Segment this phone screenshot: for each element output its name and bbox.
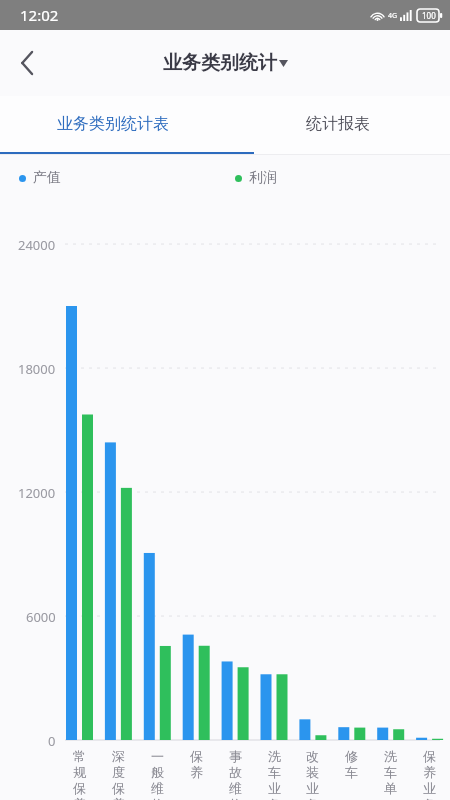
staticText: 维: [151, 780, 164, 796]
button[interactable]: 业务类别统计: [163, 51, 288, 75]
staticText: 产值: [33, 169, 61, 187]
staticText: 24000: [18, 236, 56, 254]
staticText: 业务类别统计表: [57, 114, 169, 134]
staticText: 业: [423, 780, 436, 796]
staticText: 12000: [18, 484, 56, 502]
staticText: 4G: [388, 11, 398, 21]
staticText: 18000: [18, 360, 56, 378]
staticText: 常: [73, 748, 86, 764]
staticText: 单: [384, 780, 397, 796]
staticText: 车: [268, 764, 281, 780]
staticText: 养: [423, 764, 436, 780]
staticText: 般: [151, 764, 164, 780]
staticText: 故: [229, 764, 242, 780]
button[interactable]: Back: [0, 36, 54, 90]
staticText: 一: [151, 748, 164, 764]
staticText: 养: [112, 796, 125, 800]
staticText: 洗: [268, 748, 281, 764]
staticText: 务: [268, 796, 281, 800]
staticText: 事: [229, 748, 242, 764]
staticText: 务: [423, 796, 436, 800]
staticText: 改: [306, 748, 319, 764]
staticText: 养: [190, 764, 203, 780]
staticText: 业务类别统计: [163, 51, 277, 75]
staticText: 养: [73, 796, 86, 800]
staticText: 修: [151, 796, 164, 800]
staticText: 100: [422, 10, 436, 21]
staticText: 6000: [26, 608, 56, 626]
staticText: 度: [112, 764, 125, 780]
staticText: 维: [229, 780, 242, 796]
staticText: 保: [423, 748, 436, 764]
staticText: 规: [73, 764, 86, 780]
staticText: 车: [345, 764, 358, 780]
staticText: 车: [384, 764, 397, 780]
staticText: 12:02: [20, 5, 59, 25]
staticText: 业: [268, 780, 281, 796]
staticText: 深: [112, 748, 125, 764]
staticText: 洗: [384, 748, 397, 764]
staticText: 业: [306, 780, 319, 796]
staticText: 修: [345, 748, 358, 764]
staticText: 修: [229, 796, 242, 800]
staticText: 务: [306, 796, 319, 800]
staticText: 保: [112, 780, 125, 796]
staticText: 0: [48, 732, 56, 750]
staticText: 保: [190, 748, 203, 764]
button[interactable]: 统计报表: [225, 96, 450, 152]
staticText: 利润: [249, 169, 277, 187]
button[interactable]: 业务类别统计表: [0, 96, 225, 152]
staticText: 保: [73, 780, 86, 796]
staticText: 装: [306, 764, 319, 780]
staticText: 统计报表: [306, 114, 370, 134]
